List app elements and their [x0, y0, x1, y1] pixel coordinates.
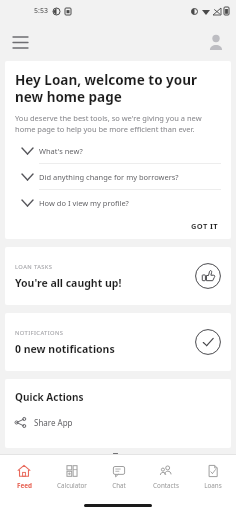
other: No notifications [195, 329, 221, 355]
button[interactable]: Share App [5, 410, 231, 434]
button[interactable]: What's new? [15, 138, 221, 163]
button[interactable]: Calculator [48, 455, 95, 499]
button[interactable]: NOTIFICATIONS [5, 313, 231, 371]
staticText: Calculator [57, 481, 87, 490]
button[interactable]: Loans [189, 455, 236, 499]
staticText: Hey Loan, welcome to your new home page [15, 71, 221, 106]
staticText: How do I view my profile? [39, 198, 129, 208]
staticText: Share App [34, 417, 73, 428]
staticText: Chat [112, 481, 126, 490]
staticText: 0 new notifications [15, 342, 115, 356]
button[interactable]: Menu [6, 28, 34, 56]
button[interactable]: LOAN TASKS [5, 247, 231, 305]
staticText: Feed [17, 481, 32, 490]
staticText: GOT IT [191, 221, 219, 231]
button[interactable]: Did anything change for my borrowers? [15, 164, 221, 189]
button[interactable]: Contacts [142, 455, 189, 499]
other: All caught up [195, 263, 221, 289]
staticText: What's new? [39, 146, 83, 156]
button[interactable]: GOT IT [189, 218, 221, 234]
staticText: You're all caught up! [15, 276, 122, 290]
button[interactable]: How do I view my profile? [15, 190, 221, 215]
staticText: Loans [204, 481, 222, 490]
staticText: NOTIFICATIONS [15, 329, 64, 337]
staticText: 5:53 [34, 6, 48, 16]
button[interactable]: Feed [0, 455, 48, 499]
staticText: Contacts [153, 481, 179, 490]
button[interactable]: Chat [95, 455, 142, 499]
staticText: You deserve the best tools, so we're giv… [15, 113, 221, 134]
staticText: LOAN TASKS [15, 263, 53, 271]
button[interactable]: Profile [202, 28, 230, 56]
staticText: Quick Actions [15, 390, 84, 404]
staticText: Did anything change for my borrowers? [39, 172, 179, 182]
